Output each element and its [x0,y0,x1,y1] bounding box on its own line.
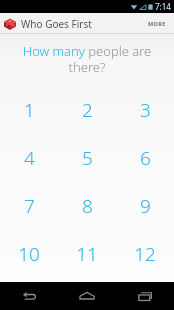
staticText: 7:14 [155,1,171,12]
staticText: 3 [140,97,151,123]
button[interactable]: 7 [0,182,58,230]
staticText: How many people are there? [9,42,165,75]
button[interactable]: 11 [58,230,116,278]
staticText: 5 [82,145,93,171]
button[interactable]: 3 [116,85,174,134]
button[interactable]: 5 [58,134,116,182]
button[interactable]: 9 [116,182,174,230]
button[interactable]: 4 [0,134,58,182]
staticText: 6 [140,145,151,171]
staticText: 4 [24,145,35,171]
staticText: 7 [24,193,35,219]
staticText: 11 [76,241,98,267]
button[interactable]: MORE [145,16,169,31]
button[interactable]: Back [0,282,58,310]
staticText: 1 [24,97,35,123]
button[interactable]: 2 [58,85,116,134]
button[interactable]: 12 [116,230,174,278]
button[interactable]: 8 [58,182,116,230]
staticText: Who Goes First [21,17,92,31]
staticText: 8 [82,193,93,219]
button[interactable]: Home [58,282,116,310]
staticText: MORE [148,20,166,27]
staticText: 10 [18,241,40,267]
staticText: 9 [140,193,151,219]
other: App icon [3,17,17,31]
staticText: 2 [82,97,93,123]
staticText: 12 [134,241,156,267]
button[interactable]: 1 [0,85,58,134]
button[interactable]: 6 [116,134,174,182]
button[interactable]: 10 [0,230,58,278]
button[interactable]: Recent apps [116,282,174,310]
